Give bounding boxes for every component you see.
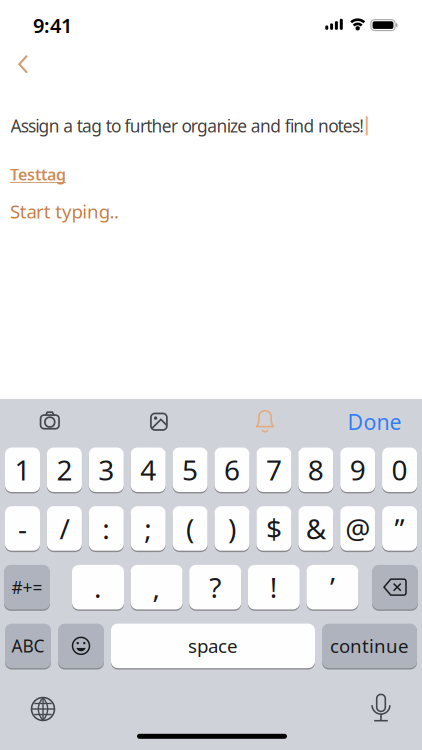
- button[interactable]: 0: [382, 447, 417, 492]
- staticText: Testtag: [10, 164, 66, 185]
- button[interactable]: ABC: [5, 624, 51, 668]
- staticText: Done: [347, 407, 401, 436]
- staticText: ?: [209, 569, 221, 606]
- staticText: -: [18, 510, 27, 547]
- button[interactable]: ”: [382, 506, 417, 551]
- button[interactable]: Dictate: [363, 687, 399, 727]
- staticText: (: [186, 510, 194, 547]
- staticText: 5: [182, 451, 198, 488]
- staticText: ”: [395, 510, 405, 547]
- staticText: 2: [56, 451, 72, 488]
- staticText: 7: [266, 451, 282, 488]
- button[interactable]: Photos: [139, 403, 179, 441]
- button[interactable]: 4: [131, 447, 166, 492]
- button[interactable]: ’: [306, 565, 358, 609]
- button[interactable]: $: [256, 506, 291, 551]
- staticText: Start typing..: [10, 199, 119, 224]
- button[interactable]: -: [5, 506, 40, 551]
- staticText: 3: [98, 451, 114, 488]
- button[interactable]: 1: [5, 447, 40, 492]
- button[interactable]: :: [89, 506, 124, 551]
- staticText: 4: [140, 451, 156, 488]
- staticText: 6: [224, 451, 240, 488]
- staticText: #+=: [11, 576, 42, 599]
- button[interactable]: Testtag: [10, 164, 66, 185]
- staticText: 8: [308, 451, 324, 488]
- staticText: 0: [392, 451, 408, 488]
- staticText: ;: [144, 510, 152, 547]
- button[interactable]: 5: [173, 447, 208, 492]
- staticText: 9: [350, 451, 366, 488]
- button[interactable]: Camera: [30, 402, 70, 440]
- button[interactable]: Done: [347, 407, 401, 436]
- button[interactable]: Emoji: [58, 624, 104, 668]
- button[interactable]: ): [214, 506, 249, 551]
- button[interactable]: Reminder: [245, 403, 285, 441]
- button[interactable]: 8: [298, 447, 333, 492]
- button[interactable]: Delete: [372, 565, 418, 609]
- staticText: Assign a tag to further organize and fin…: [10, 114, 364, 137]
- button[interactable]: !: [248, 565, 300, 609]
- button[interactable]: Back: [7, 51, 37, 77]
- staticText: .: [94, 569, 102, 606]
- staticText: !: [270, 569, 278, 606]
- button[interactable]: 6: [214, 447, 249, 492]
- button[interactable]: ;: [131, 506, 166, 551]
- staticText: ,: [153, 569, 161, 606]
- button[interactable]: 9: [340, 447, 375, 492]
- staticText: ’: [330, 569, 335, 606]
- button[interactable]: ,: [131, 565, 183, 609]
- button[interactable]: (: [173, 506, 208, 551]
- button[interactable]: 7: [256, 447, 291, 492]
- button[interactable]: @: [340, 506, 375, 551]
- staticText: space: [188, 633, 238, 658]
- button[interactable]: #+=: [4, 565, 50, 609]
- button[interactable]: .: [72, 565, 124, 609]
- button[interactable]: space: [111, 624, 315, 668]
- staticText: @: [345, 510, 370, 547]
- button[interactable]: Next keyboard: [25, 691, 61, 727]
- button[interactable]: 3: [89, 447, 124, 492]
- button[interactable]: ?: [189, 565, 241, 609]
- button[interactable]: 2: [47, 447, 82, 492]
- staticText: :: [102, 510, 110, 547]
- staticText: ): [228, 510, 236, 547]
- staticText: ABC: [11, 634, 44, 657]
- staticText: $: [266, 510, 282, 547]
- button[interactable]: continue: [322, 624, 417, 668]
- staticText: /: [59, 510, 69, 547]
- staticText: continue: [330, 633, 409, 658]
- staticText: 9:41: [33, 12, 72, 38]
- button[interactable]: /: [47, 506, 82, 551]
- staticText: &: [306, 510, 326, 547]
- button[interactable]: &: [298, 506, 333, 551]
- staticText: 1: [14, 451, 30, 488]
